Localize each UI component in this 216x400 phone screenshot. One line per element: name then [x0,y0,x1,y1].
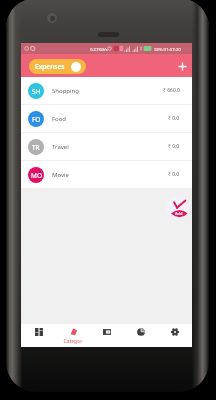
button[interactable]: FO [21,105,192,132]
staticText: 38% 01:57:20 [154,46,181,52]
button[interactable]: Expenses [29,59,86,74]
button[interactable]: Dashboard [21,324,56,347]
staticText: TR [32,143,40,152]
button[interactable]: Confirm [166,196,189,219]
button[interactable]: Accounts [90,324,124,347]
staticText: ₹ 660.0 [163,87,180,94]
staticText: Categor· [63,338,84,345]
button[interactable]: Reports [124,324,158,347]
staticText: Expenses [35,62,65,71]
button[interactable]: Categories [56,324,90,347]
staticText: Movie [52,171,69,179]
staticText: Shopping [52,87,79,95]
staticText: ₹ 0.0 [168,171,180,178]
staticText: SH [32,87,41,96]
staticText: MO [31,171,42,180]
staticText: FO [32,115,41,124]
staticText: Food [52,115,67,123]
staticText: 0.27KB/s [90,46,108,52]
staticText: ₹ 0.0 [168,115,180,122]
button[interactable]: Add [173,57,191,75]
button[interactable]: TR [21,133,192,160]
staticText: Travel [52,143,69,151]
button[interactable]: Settings [158,324,192,347]
button[interactable]: SH [21,77,192,104]
button[interactable]: MO [21,161,192,188]
staticText: ₹ 0.0 [168,143,180,150]
staticText: Add [175,211,183,216]
